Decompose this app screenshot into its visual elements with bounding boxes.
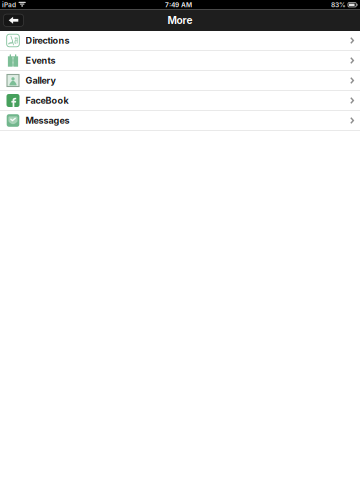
- button[interactable]: Gallery: [0, 71, 360, 91]
- staticText: Directions: [25, 35, 69, 46]
- staticText: Gallery: [25, 75, 55, 86]
- button[interactable]: Back: [3, 14, 23, 26]
- staticText: Events: [25, 55, 55, 66]
- staticText: FaceBook: [25, 95, 68, 106]
- button[interactable]: FaceBook: [0, 91, 360, 111]
- staticText: More: [167, 14, 192, 26]
- staticText: iPad: [2, 1, 16, 9]
- button[interactable]: Messages: [0, 111, 360, 131]
- button[interactable]: Events: [0, 51, 360, 71]
- staticText: 7:49 AM: [165, 1, 192, 9]
- staticText: 83%: [331, 1, 346, 9]
- button[interactable]: Directions: [0, 31, 360, 51]
- staticText: Messages: [25, 115, 69, 126]
